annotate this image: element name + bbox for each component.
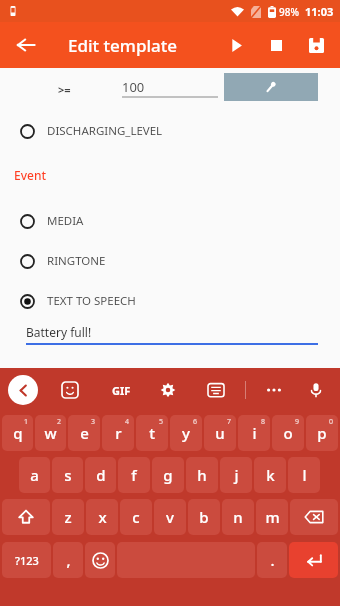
button[interactable]: m: [256, 499, 288, 535]
staticText: r: [115, 423, 122, 443]
staticText: s: [64, 465, 72, 485]
staticText: 11:03: [305, 4, 334, 19]
button[interactable]: Stop: [256, 25, 296, 65]
button[interactable]: Play: [216, 25, 256, 65]
staticText: Battery full!: [26, 324, 92, 340]
button[interactable]: Save: [296, 25, 336, 65]
staticText: n: [233, 507, 243, 527]
staticText: w: [44, 423, 57, 443]
staticText: u: [215, 423, 225, 443]
button[interactable]: Voice input: [302, 376, 330, 404]
button[interactable]: y: [170, 415, 202, 451]
button[interactable]: Clipboard: [202, 376, 230, 404]
button[interactable]: Settings: [154, 376, 182, 404]
staticText: RINGTONE: [47, 253, 106, 269]
button[interactable]: Battery full!: [0, 320, 340, 352]
staticText: l: [302, 465, 307, 485]
button[interactable]: Emoji: [85, 542, 115, 578]
button[interactable]: Stickers: [56, 376, 84, 404]
button[interactable]: GIF: [106, 375, 136, 405]
button[interactable]: t: [136, 415, 168, 451]
button[interactable]: Tools: [224, 73, 318, 101]
button[interactable]: More options: [260, 376, 288, 404]
staticText: g: [163, 465, 173, 485]
button[interactable]: Backspace: [290, 499, 338, 535]
staticText: c: [132, 507, 140, 527]
staticText: 100: [122, 78, 145, 96]
staticText: TEXT TO SPEECH: [47, 293, 136, 309]
button[interactable]: e: [68, 415, 100, 451]
staticText: x: [98, 507, 107, 527]
button[interactable]: c: [120, 499, 152, 535]
button[interactable]: l: [288, 457, 320, 493]
staticText: DISCHARGING_LEVEL: [47, 123, 163, 139]
staticText: ,: [66, 550, 71, 570]
button[interactable]: ?123: [2, 542, 51, 578]
staticText: Event: [14, 167, 47, 183]
staticText: q: [13, 423, 23, 443]
staticText: t: [149, 423, 155, 443]
staticText: 3: [91, 417, 96, 427]
staticText: .: [270, 550, 275, 570]
staticText: 6: [193, 417, 198, 427]
staticText: d: [96, 465, 106, 485]
staticText: f: [131, 465, 137, 485]
staticText: 9: [295, 417, 300, 427]
button[interactable]: x: [86, 499, 118, 535]
staticText: e: [80, 423, 89, 443]
button[interactable]: w: [35, 415, 66, 451]
staticText: k: [266, 465, 275, 485]
button[interactable]: RINGTONE: [0, 246, 340, 276]
button[interactable]: v: [154, 499, 186, 535]
staticText: >=: [58, 82, 71, 97]
button[interactable]: h: [186, 457, 218, 493]
staticText: j: [234, 465, 239, 485]
staticText: i: [252, 423, 257, 443]
staticText: a: [30, 465, 39, 485]
staticText: b: [199, 507, 209, 527]
staticText: y: [182, 423, 190, 443]
button[interactable]: MEDIA: [0, 206, 340, 236]
button[interactable]: TEXT TO SPEECH: [0, 286, 340, 316]
button[interactable]: Expand toolbar: [8, 375, 38, 405]
button[interactable]: d: [85, 457, 116, 493]
button[interactable]: Enter: [289, 542, 338, 578]
button[interactable]: u: [204, 415, 236, 451]
staticText: 5: [159, 417, 164, 427]
button[interactable]: k: [254, 457, 286, 493]
button[interactable]: b: [188, 499, 220, 535]
button[interactable]: ,: [53, 542, 83, 578]
button[interactable]: i: [238, 415, 270, 451]
staticText: 1: [24, 417, 29, 427]
staticText: 0: [329, 417, 334, 427]
staticText: ?123: [15, 553, 39, 568]
staticText: GIF: [112, 383, 131, 398]
staticText: 4: [125, 417, 130, 427]
button[interactable]: n: [222, 499, 254, 535]
button[interactable]: o: [272, 415, 304, 451]
button[interactable]: r: [102, 415, 134, 451]
button[interactable]: .: [257, 542, 287, 578]
staticText: z: [64, 507, 72, 527]
button[interactable]: p: [306, 415, 338, 451]
button[interactable]: g: [152, 457, 184, 493]
staticText: 8: [261, 417, 266, 427]
button[interactable]: Shift: [2, 499, 50, 535]
button[interactable]: z: [52, 499, 84, 535]
button[interactable]: DISCHARGING_LEVEL: [0, 116, 340, 146]
staticText: v: [166, 507, 174, 527]
button[interactable]: f: [118, 457, 150, 493]
staticText: p: [317, 423, 327, 443]
staticText: o: [283, 423, 293, 443]
staticText: 7: [227, 417, 232, 427]
staticText: 2: [57, 417, 62, 427]
button[interactable]: a: [19, 457, 50, 493]
staticText: h: [197, 465, 207, 485]
staticText: MEDIA: [47, 213, 84, 229]
button[interactable]: s: [52, 457, 83, 493]
button[interactable]: Back: [6, 25, 46, 65]
button[interactable]: j: [220, 457, 252, 493]
button[interactable]: q: [2, 415, 33, 451]
staticText: Edit template: [68, 34, 178, 57]
